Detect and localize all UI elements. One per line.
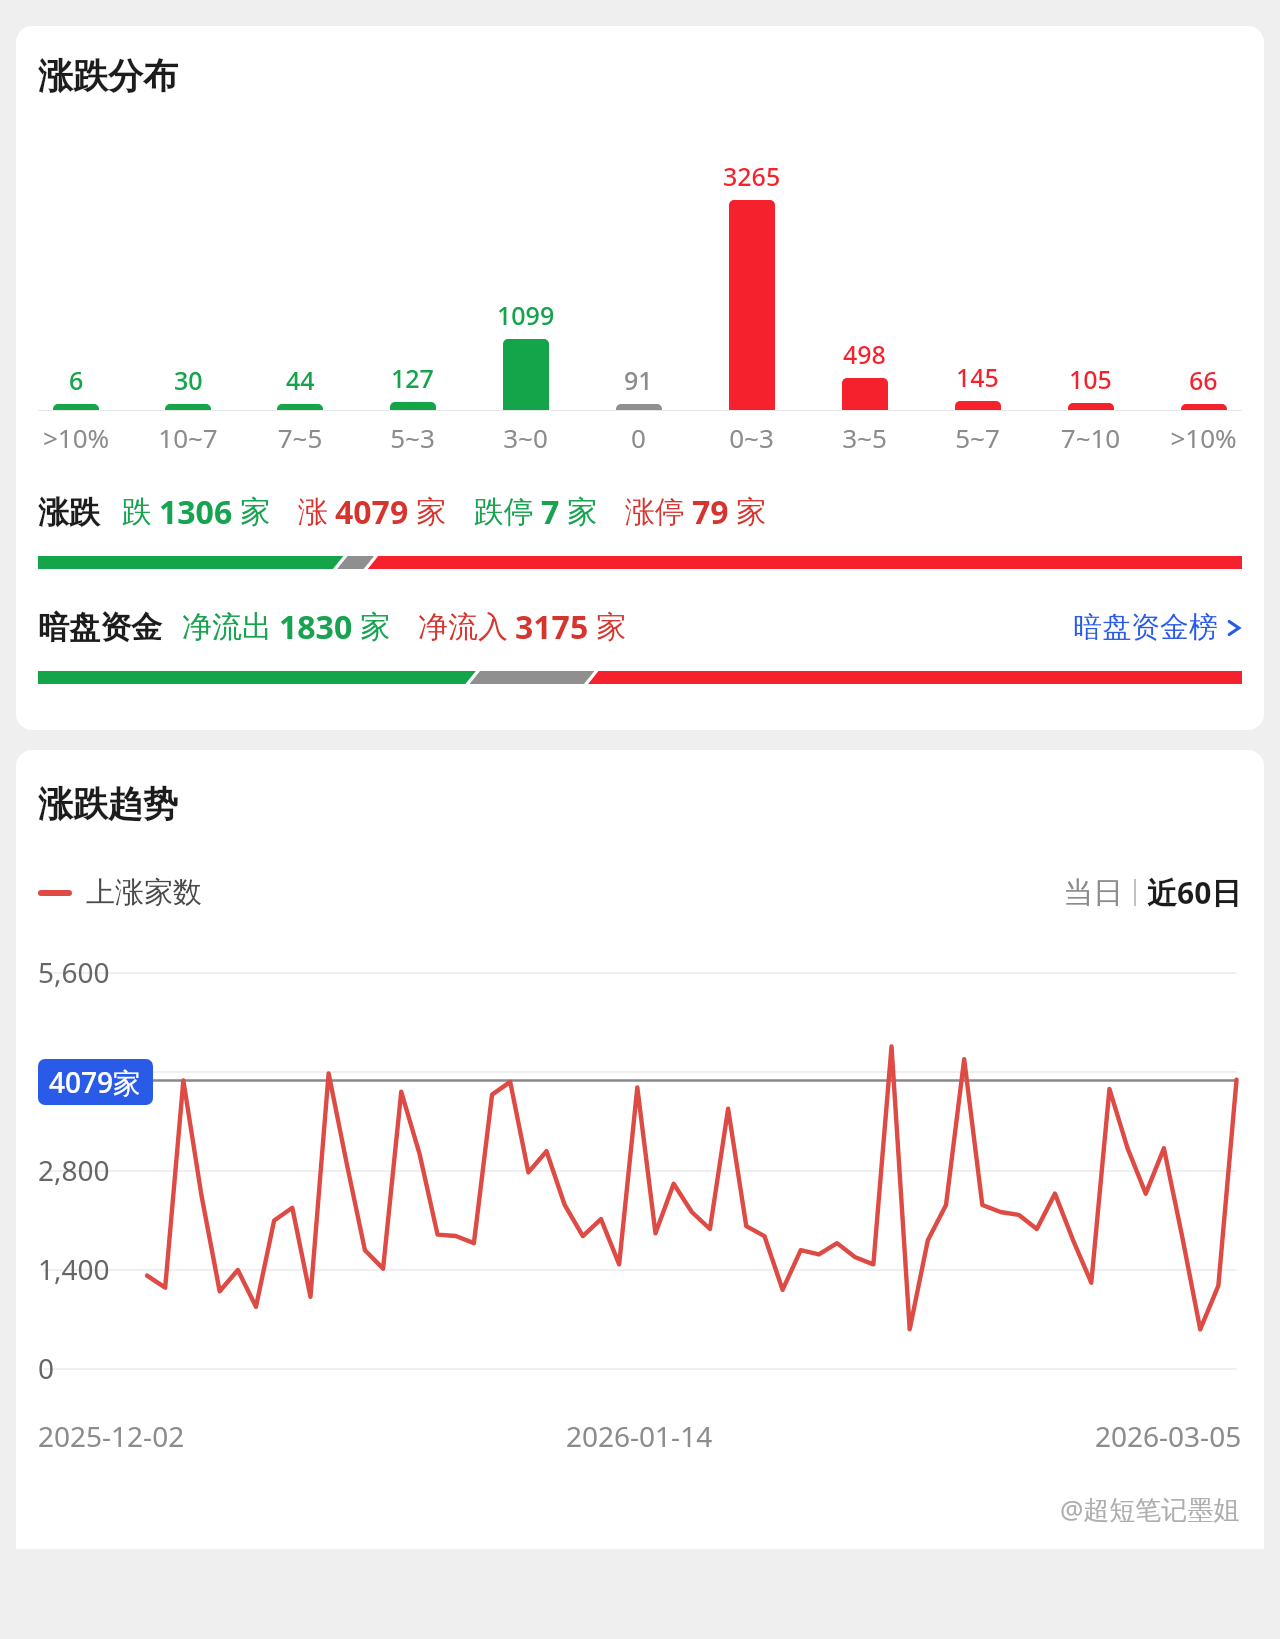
staticText: >10% — [20, 420, 132, 455]
staticText: 4,200 — [38, 1052, 110, 1090]
staticText: 3175 — [515, 605, 589, 649]
staticText: 涨 — [298, 493, 328, 531]
staticText: 家 — [736, 493, 766, 531]
staticText: @超短笔记墨姐 — [1060, 1491, 1240, 1527]
staticText: 2026-01-14 — [566, 1417, 713, 1455]
staticText: 10~7 — [132, 420, 244, 455]
staticText: 127 — [391, 361, 434, 395]
staticText: 0~3 — [695, 420, 808, 455]
staticText: 涨停 — [625, 493, 685, 531]
staticText: 6 — [69, 363, 84, 397]
staticText: 498 — [843, 337, 886, 371]
button[interactable]: 上涨家数 — [38, 874, 202, 911]
staticText: 净流入 — [418, 608, 508, 646]
staticText: 涨跌趋势 — [38, 782, 178, 826]
staticText: 暗盘资金 — [38, 608, 162, 647]
staticText: 44 — [286, 363, 315, 397]
button[interactable]: 涨跌 — [38, 490, 1242, 534]
button[interactable]: 暗盘资金榜 — [1073, 609, 1242, 646]
staticText: 1099 — [497, 298, 555, 332]
staticText: 1,400 — [38, 1250, 110, 1288]
staticText: 66 — [1189, 363, 1218, 397]
staticText: 2,800 — [38, 1151, 110, 1189]
staticText: 7 — [541, 490, 560, 534]
staticText: 家 — [360, 608, 390, 646]
staticText: 7~5 — [244, 420, 356, 455]
staticText: 3265 — [723, 159, 781, 193]
other: 更多 — [1226, 615, 1242, 641]
staticText: 5~7 — [921, 420, 1034, 455]
button[interactable]: 近60日 — [1147, 872, 1242, 913]
staticText: 3~0 — [469, 420, 582, 455]
staticText: 家 — [596, 608, 626, 646]
staticText: 上涨家数 — [86, 874, 202, 911]
staticText: 5~3 — [356, 420, 469, 455]
staticText: 0 — [38, 1349, 55, 1387]
staticText: 涨跌分布 — [38, 54, 178, 98]
staticText: 91 — [624, 363, 653, 397]
button[interactable]: 当日 — [1063, 874, 1123, 912]
staticText: 79 — [692, 490, 729, 534]
staticText: 家 — [567, 493, 597, 531]
staticText: 4079 — [335, 490, 409, 534]
staticText: 跌 — [122, 493, 152, 531]
staticText: 0 — [582, 420, 695, 455]
staticText: 家 — [240, 493, 270, 531]
staticText: 暗盘资金榜 — [1073, 609, 1218, 646]
staticText: 净流出 — [182, 608, 272, 646]
staticText: 2025-12-02 — [38, 1417, 185, 1455]
staticText: 105 — [1069, 362, 1112, 396]
staticText: 7~10 — [1034, 420, 1147, 455]
staticText: 1830 — [279, 605, 353, 649]
staticText: 跌停 — [474, 493, 534, 531]
staticText: 涨跌 — [38, 493, 100, 532]
staticText: 当日 — [1063, 874, 1123, 912]
staticText: 近60日 — [1147, 872, 1242, 913]
staticText: 1306 — [159, 490, 233, 534]
staticText: 家 — [416, 493, 446, 531]
staticText: 4079家 — [49, 1063, 142, 1101]
staticText: 3~5 — [808, 420, 921, 455]
staticText: 2026-03-05 — [1095, 1417, 1242, 1455]
staticText: 145 — [956, 360, 999, 394]
staticText: >10% — [1147, 420, 1260, 455]
staticText: 5,600 — [38, 953, 110, 991]
staticText: 30 — [174, 363, 203, 397]
